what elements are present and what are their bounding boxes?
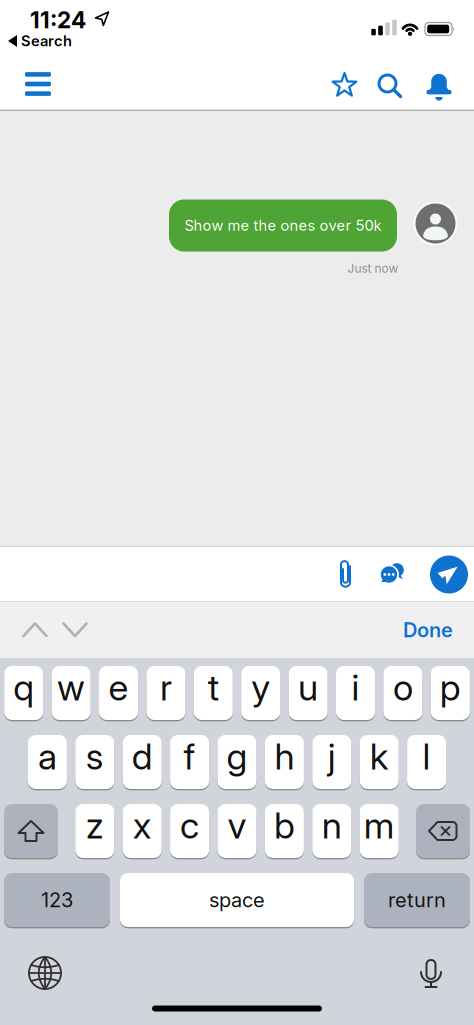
staticText: Search [21, 32, 72, 50]
staticText: s [86, 735, 104, 778]
button[interactable]: Search [8, 32, 72, 50]
staticText: k [370, 735, 389, 778]
staticText: v [227, 804, 246, 847]
button[interactable]: Quick replies [380, 563, 404, 583]
button[interactable]: Attach file [339, 559, 352, 589]
button[interactable]: l [407, 735, 446, 789]
button[interactable]: i [336, 666, 375, 720]
button[interactable]: r [146, 666, 185, 720]
staticText: u [298, 666, 318, 709]
button[interactable]: Menu [25, 72, 51, 96]
button[interactable]: d [123, 735, 162, 789]
button[interactable]: s [75, 735, 114, 789]
button[interactable]: a [28, 735, 67, 789]
button[interactable]: z [75, 804, 114, 858]
button[interactable]: f [170, 735, 209, 789]
staticText: h [274, 735, 294, 778]
staticText: z [86, 804, 104, 847]
staticText: Just now [347, 261, 398, 276]
button[interactable]: Shift [4, 804, 58, 858]
staticText: x [133, 804, 152, 847]
button[interactable]: Dictate [420, 957, 442, 988]
staticText: m [364, 804, 395, 847]
staticText: d [132, 735, 153, 778]
button[interactable]: y [241, 666, 280, 720]
button[interactable]: Done [403, 618, 453, 642]
button[interactable]: k [360, 735, 399, 789]
button[interactable]: u [289, 666, 328, 720]
staticText: w [57, 666, 85, 709]
staticText: g [226, 735, 247, 778]
staticText: Done [403, 618, 453, 642]
staticText: space [209, 888, 265, 912]
button[interactable]: w [52, 666, 91, 720]
button[interactable]: Send [430, 555, 468, 593]
staticText: q [13, 666, 34, 709]
button[interactable]: return [364, 873, 470, 927]
button[interactable]: space [120, 873, 354, 927]
button[interactable]: t [194, 666, 233, 720]
button[interactable]: Previous field [22, 621, 48, 638]
staticText: 123 [41, 888, 73, 912]
button[interactable]: n [312, 804, 351, 858]
button[interactable]: p [431, 666, 470, 720]
staticText: 11:24 [30, 7, 86, 33]
button[interactable]: h [265, 735, 304, 789]
button[interactable]: m [360, 804, 399, 858]
button[interactable]: o [383, 666, 422, 720]
staticText: r [160, 666, 172, 709]
staticText: p [440, 666, 461, 709]
staticText: t [208, 666, 219, 709]
button[interactable]: g [217, 735, 256, 789]
staticText: y [251, 666, 270, 709]
button[interactable]: Favorite [331, 71, 358, 99]
button[interactable]: Notifications [425, 71, 453, 101]
button[interactable]: c [170, 804, 209, 858]
staticText: Show me the ones over 50k [184, 217, 381, 234]
button[interactable]: q [4, 666, 43, 720]
staticText: o [393, 666, 413, 709]
button[interactable]: Next keyboard [28, 956, 62, 990]
button[interactable]: Delete [416, 804, 470, 858]
button[interactable]: Search [377, 73, 402, 98]
staticText: c [180, 804, 199, 847]
button[interactable]: 123 [4, 873, 110, 927]
button[interactable]: x [123, 804, 162, 858]
staticText: j [328, 735, 336, 778]
button[interactable]: v [217, 804, 256, 858]
staticText: l [423, 735, 431, 778]
button[interactable]: Next field [62, 621, 88, 638]
staticText: f [184, 735, 196, 778]
staticText: a [38, 735, 57, 778]
staticText: i [351, 666, 359, 709]
button[interactable]: b [265, 804, 304, 858]
staticText: b [274, 804, 295, 847]
button[interactable]: j [312, 735, 351, 789]
staticText: n [322, 804, 342, 847]
staticText: return [388, 888, 446, 912]
staticText: e [108, 666, 128, 709]
button[interactable]: e [99, 666, 138, 720]
